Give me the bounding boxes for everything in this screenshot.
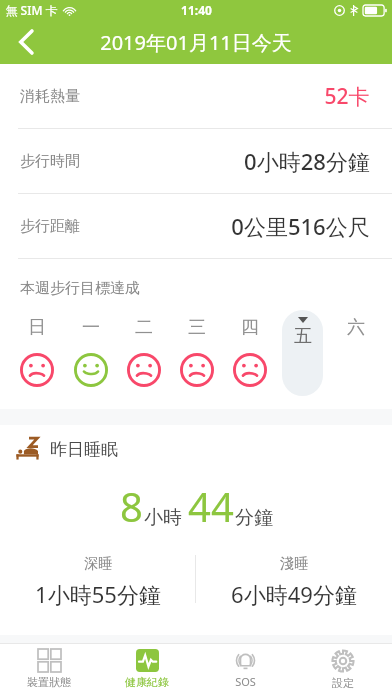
staticText: SOS — [235, 674, 256, 689]
button[interactable]: 裝置狀態 — [0, 644, 98, 696]
button[interactable]: 深睡 — [0, 555, 195, 625]
staticText: 二 — [135, 316, 153, 339]
staticText: 本週步行目標達成 — [20, 279, 140, 298]
button[interactable]: 設定 — [294, 644, 392, 696]
staticText: 0公里516公尺 — [231, 211, 370, 241]
staticText: 1小時55分鐘 — [35, 579, 161, 609]
staticText: 6小時49分鐘 — [231, 579, 357, 609]
staticText: 小時 — [144, 506, 182, 530]
staticText: 健康紀錄 — [125, 675, 169, 689]
staticText: 一 — [82, 316, 100, 339]
button[interactable]: 消耗熱量 — [0, 64, 392, 128]
staticText: 消耗熱量 — [20, 87, 80, 106]
staticText: 三 — [188, 316, 206, 339]
button[interactable]: 淺睡 — [196, 555, 392, 625]
staticText: 四 — [241, 316, 259, 339]
button[interactable]: Back — [0, 20, 52, 64]
staticText: 步行時間 — [20, 152, 80, 171]
button[interactable]: 六 — [329, 310, 382, 405]
button[interactable]: 日 — [10, 310, 64, 405]
button[interactable]: 三 — [170, 310, 223, 405]
staticText: 52卡 — [324, 82, 370, 111]
staticText: 無 SIM 卡 — [5, 2, 58, 18]
button[interactable]: 步行時間 — [0, 129, 392, 193]
staticText: 0小時28分鐘 — [244, 146, 370, 176]
button[interactable]: SOS — [196, 644, 294, 696]
staticText: 五 — [294, 325, 312, 348]
staticText: 深睡 — [84, 555, 112, 573]
staticText: 裝置狀態 — [27, 675, 71, 689]
button[interactable]: 四 — [223, 310, 276, 405]
staticText: 昨日睡眠 — [50, 439, 118, 460]
staticText: 8 — [120, 479, 143, 533]
button[interactable]: 二 — [117, 310, 170, 405]
button[interactable]: 步行距離 — [0, 194, 392, 258]
staticText: 44 — [188, 479, 234, 533]
staticText: 設定 — [332, 676, 354, 690]
staticText: 步行距離 — [20, 217, 80, 236]
staticText: 2019年01月11日今天 — [100, 29, 292, 56]
staticText: 日 — [28, 316, 46, 339]
staticText: 六 — [347, 316, 365, 339]
staticText: 淺睡 — [280, 555, 308, 573]
button[interactable]: 五 — [276, 310, 329, 405]
staticText: 分鐘 — [235, 506, 273, 530]
button[interactable]: 健康紀錄 — [98, 644, 196, 696]
staticText: 11:40 — [181, 2, 212, 18]
button[interactable]: 一 — [64, 310, 117, 405]
